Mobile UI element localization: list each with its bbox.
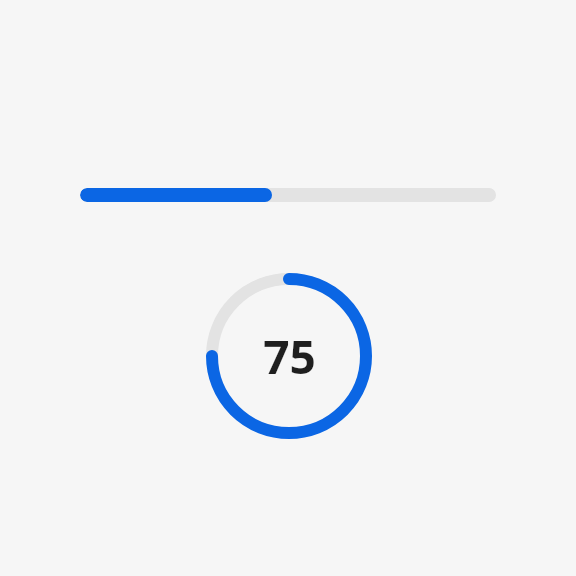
staticText: 75 bbox=[263, 325, 316, 388]
button[interactable]: Score 75 out of 100 bbox=[206, 273, 372, 439]
button[interactable]: Progress 46 percent bbox=[80, 188, 496, 202]
